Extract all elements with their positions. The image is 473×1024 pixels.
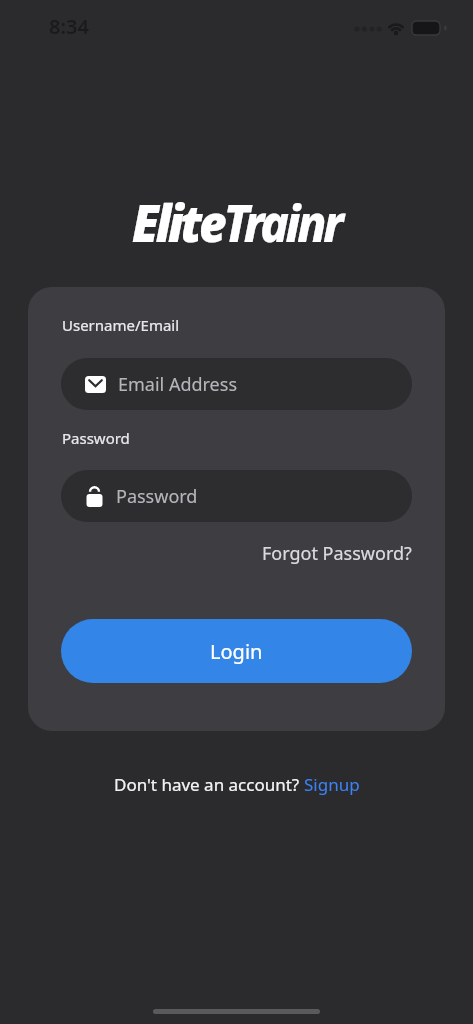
button[interactable]: Don't have an account? bbox=[114, 773, 360, 796]
button[interactable]: Email Address bbox=[61, 358, 412, 410]
staticText: 8:34 bbox=[49, 13, 89, 40]
button[interactable]: Login bbox=[61, 619, 412, 683]
button[interactable]: Password bbox=[61, 470, 412, 522]
staticText: Password bbox=[116, 484, 198, 509]
staticText: Username/Email bbox=[62, 315, 180, 335]
staticText: Forgot Password? bbox=[262, 541, 412, 566]
staticText: Password bbox=[62, 428, 130, 448]
staticText: Signup bbox=[304, 773, 360, 796]
staticText: Email Address bbox=[118, 372, 238, 397]
staticText: Don't have an account? bbox=[114, 773, 304, 796]
staticText: EliteTrainr bbox=[132, 186, 341, 257]
button[interactable]: Forgot Password? bbox=[262, 541, 412, 566]
staticText: Login bbox=[210, 638, 263, 665]
